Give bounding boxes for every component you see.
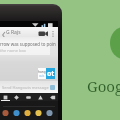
staticText: hang bbox=[38, 70, 46, 74]
button[interactable]: Backspace bbox=[46, 93, 58, 101]
staticText: ot bbox=[47, 69, 55, 79]
button[interactable]: Nature bbox=[22, 93, 34, 101]
staticText: Google bbox=[87, 76, 120, 96]
button[interactable]: Emotions bbox=[11, 93, 22, 101]
button[interactable]: hang bbox=[38, 68, 55, 79]
staticText: Send Hangouts message bbox=[2, 85, 49, 90]
staticText: rrow was supposed to point to bbox=[0, 41, 56, 47]
button[interactable]: rrow was supposed to point to bbox=[0, 37, 50, 55]
button[interactable]: Recent bbox=[0, 93, 11, 101]
other: Back bbox=[1, 30, 6, 35]
staticText: the name box bbox=[0, 48, 26, 53]
button[interactable]: Back bbox=[0, 27, 58, 37]
button[interactable]: Video call bbox=[37, 27, 48, 37]
staticText: outs bbox=[39, 74, 45, 78]
button[interactable]: Places bbox=[34, 93, 46, 101]
button[interactable]: Send bbox=[50, 85, 55, 90]
staticText: G Rajs bbox=[6, 29, 21, 36]
button[interactable]: More options bbox=[49, 28, 57, 36]
